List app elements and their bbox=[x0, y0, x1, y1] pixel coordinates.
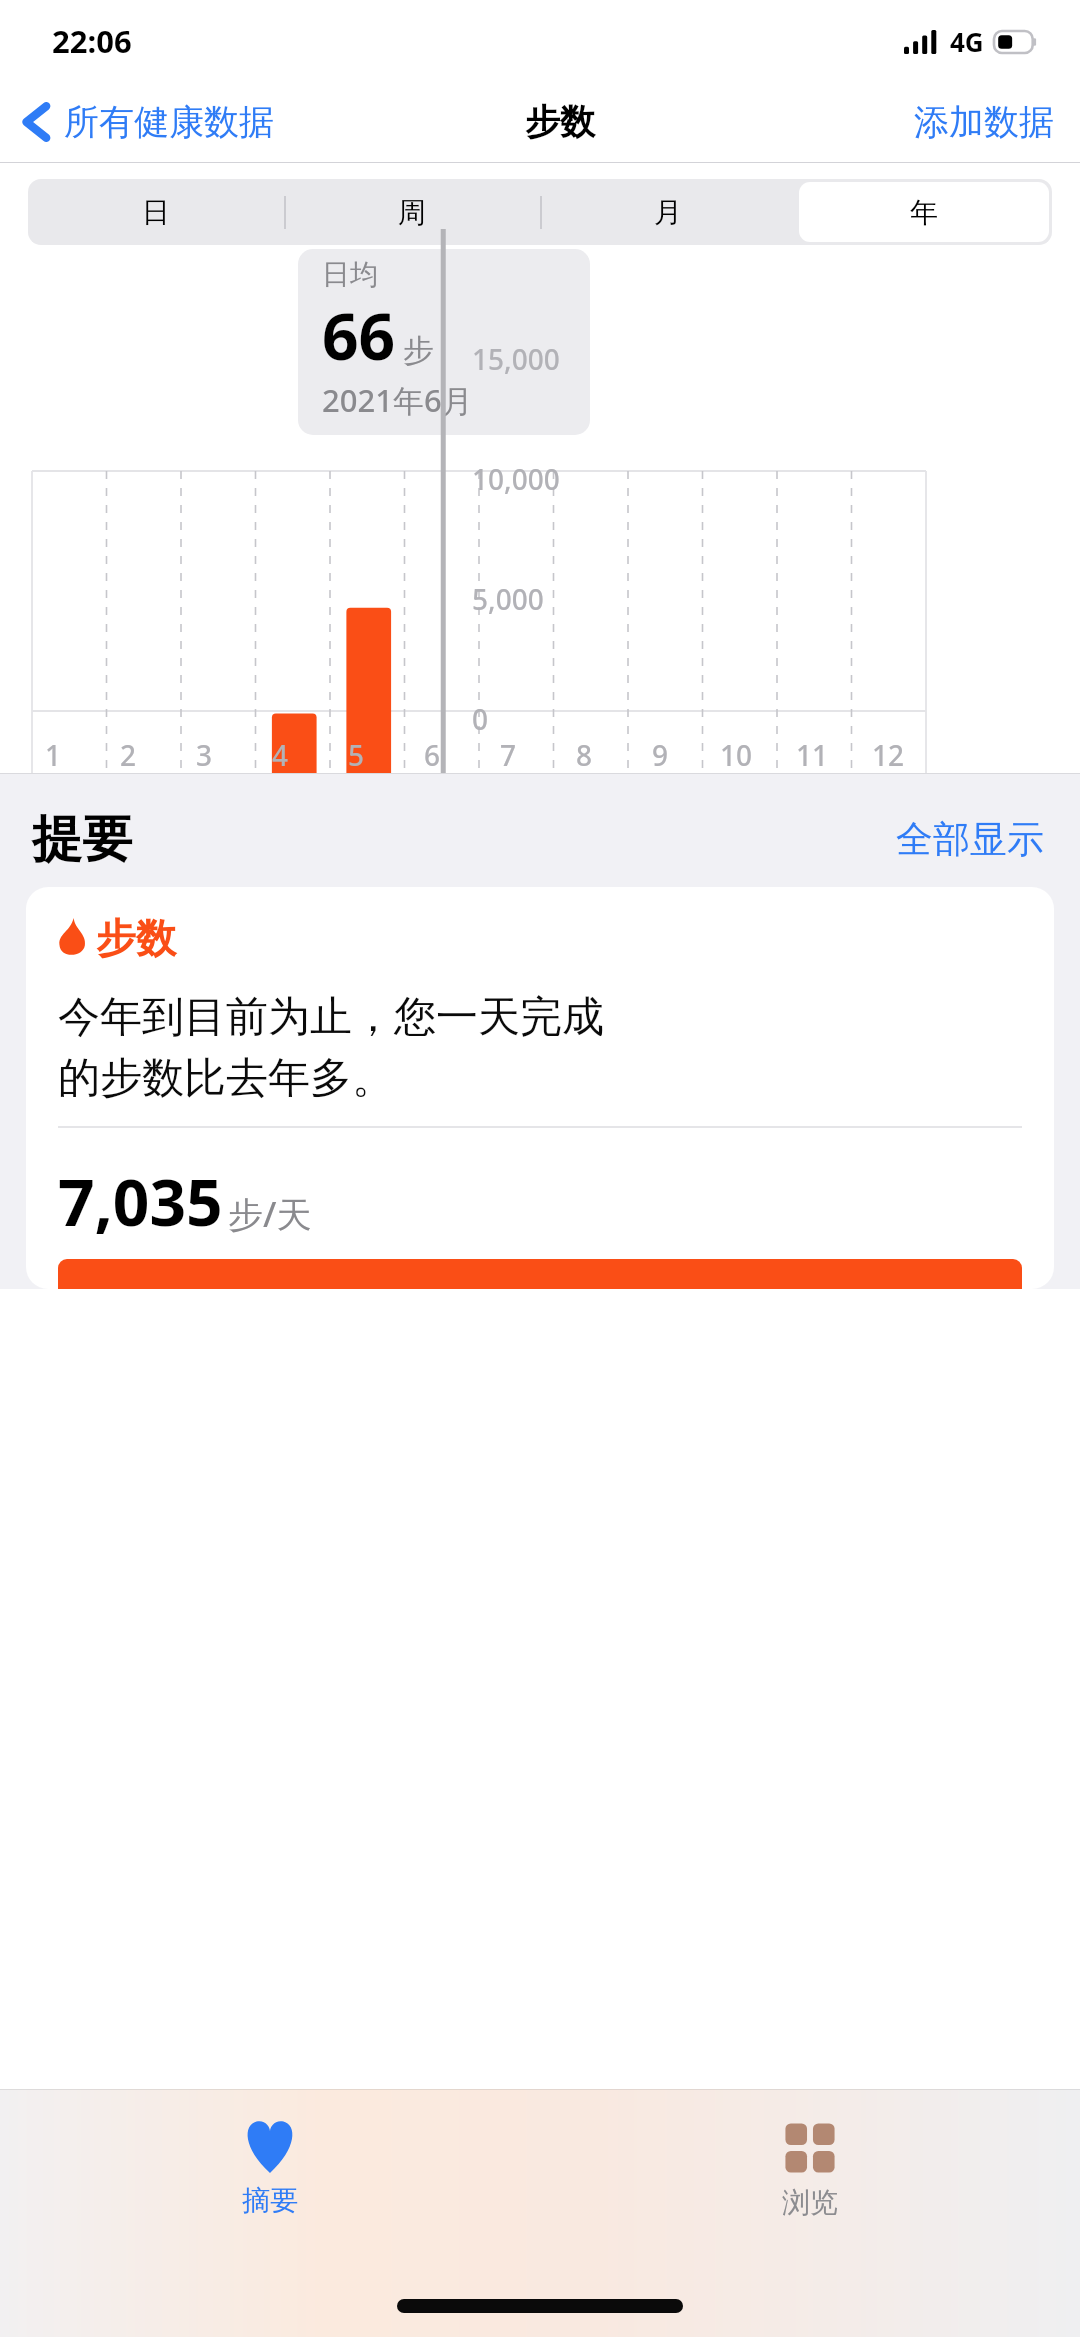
other: 浏览 bbox=[783, 2121, 837, 2175]
button[interactable]: 浏览 bbox=[540, 2113, 1080, 2228]
other: 摘要 bbox=[243, 2121, 297, 2173]
staticText: 所有健康数据 bbox=[64, 100, 274, 144]
staticText: 步数 bbox=[525, 100, 595, 144]
staticText: 步/天 bbox=[228, 1190, 312, 1238]
staticText: 11 bbox=[796, 736, 829, 774]
staticText: 摘要 bbox=[242, 2183, 298, 2218]
staticText: 9 bbox=[652, 736, 669, 774]
staticText: 2021年6月 bbox=[322, 379, 473, 421]
staticText: 2 bbox=[120, 736, 137, 774]
staticText: 年 bbox=[910, 195, 938, 230]
staticText: 日 bbox=[142, 195, 170, 230]
button[interactable]: 月 bbox=[543, 182, 793, 242]
staticText: 0 bbox=[472, 700, 489, 738]
button[interactable]: 步数 bbox=[26, 887, 1054, 1289]
staticText: 6 bbox=[424, 736, 441, 774]
staticText: 4 bbox=[272, 736, 289, 774]
staticText: 7,035 bbox=[58, 1158, 223, 1245]
staticText: 8 bbox=[576, 736, 593, 774]
staticText: 月 bbox=[654, 195, 682, 230]
staticText: 步数 bbox=[96, 913, 176, 963]
button[interactable]: 周 bbox=[287, 182, 537, 242]
staticText: 4G bbox=[950, 24, 984, 59]
staticText: 步 bbox=[403, 331, 434, 370]
staticText: 浏览 bbox=[782, 2185, 838, 2220]
staticText: 3 bbox=[196, 736, 213, 774]
staticText: 22:06 bbox=[52, 20, 132, 62]
button[interactable]: 日 bbox=[31, 182, 281, 242]
button[interactable]: 添加数据 bbox=[888, 90, 1080, 154]
staticText: 5,000 bbox=[472, 580, 544, 618]
staticText: 今年到目前为止，您一天完成 的步数比去年多。 bbox=[58, 991, 604, 1104]
staticText: 提要 bbox=[32, 808, 132, 871]
button[interactable]: 摘要 bbox=[0, 2113, 540, 2226]
button[interactable]: 年 bbox=[799, 182, 1049, 242]
staticText: 5 bbox=[348, 736, 365, 774]
staticText: 日均 bbox=[322, 257, 378, 292]
staticText: 周 bbox=[398, 195, 426, 230]
staticText: 7 bbox=[500, 736, 517, 774]
staticText: 1 bbox=[45, 736, 62, 774]
button[interactable]: 所有健康数据 bbox=[20, 92, 274, 152]
staticText: 12 bbox=[872, 736, 905, 774]
button[interactable]: 全部显示 bbox=[890, 810, 1050, 869]
staticText: 10,000 bbox=[472, 460, 560, 498]
staticText: 15,000 bbox=[472, 340, 560, 378]
staticText: 66 bbox=[322, 292, 396, 379]
staticText: 10 bbox=[720, 736, 753, 774]
